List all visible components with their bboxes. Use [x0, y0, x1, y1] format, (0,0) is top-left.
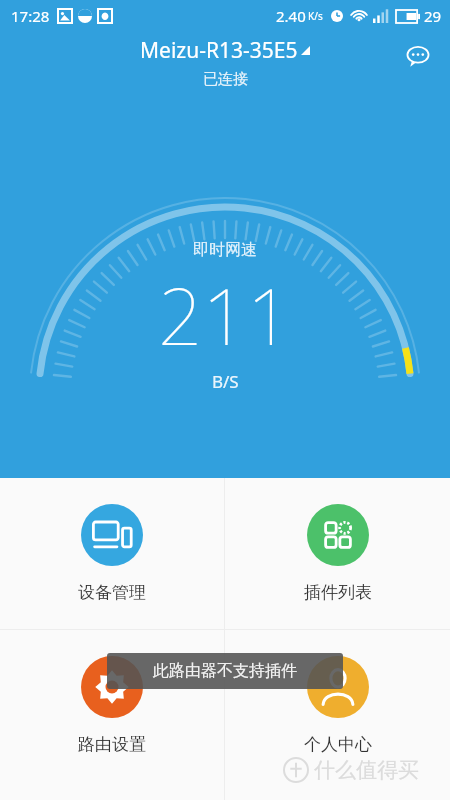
staticText: B/S [212, 370, 239, 393]
button[interactable]: 设备管理 [0, 478, 224, 629]
button[interactable]: 路由设置 [0, 630, 224, 800]
staticText: 个人中心 [304, 734, 372, 755]
staticText: 此路由器不支持插件 [153, 661, 297, 681]
staticText: 路由设置 [78, 734, 146, 755]
button[interactable]: Messages [398, 36, 438, 76]
staticText: 什么值得买 [314, 757, 419, 783]
staticText: 29 [424, 6, 442, 26]
staticText: 17:28 [11, 6, 50, 26]
staticText: 即时网速 [193, 240, 257, 260]
button[interactable]: 插件列表 [225, 478, 450, 629]
staticText: K/s [308, 9, 323, 23]
staticText: 已连接 [203, 70, 248, 89]
staticText: 211 [158, 262, 292, 368]
staticText: 设备管理 [78, 582, 146, 603]
button[interactable]: 个人中心 [225, 630, 450, 800]
staticText: 插件列表 [304, 582, 372, 603]
staticText: 2.40 [276, 6, 306, 26]
staticText: Meizu-R13-35E5 [140, 36, 298, 65]
